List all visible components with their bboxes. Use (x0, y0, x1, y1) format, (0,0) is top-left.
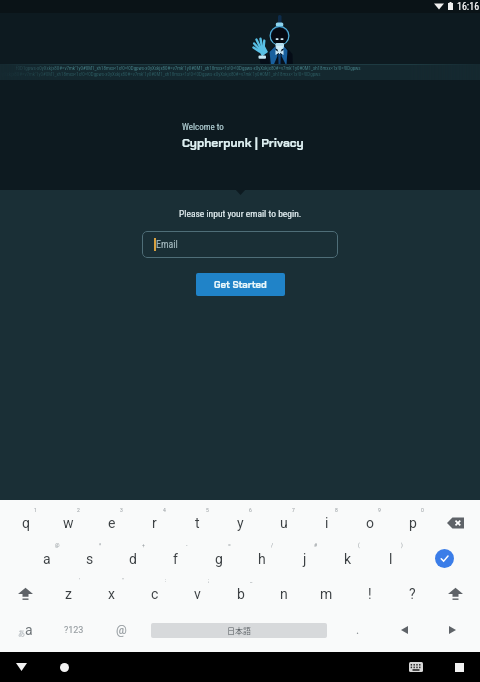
staticText: ) (401, 542, 403, 548)
staticText: 1 (34, 507, 37, 513)
button[interactable]: Back (6, 652, 36, 682)
staticText: j (303, 551, 307, 567)
staticText: y (237, 515, 244, 531)
button[interactable]: Move cursor right (430, 614, 474, 646)
button[interactable]: z (47, 576, 90, 611)
button[interactable]: Shift (434, 576, 477, 611)
staticText: 5 (206, 507, 209, 513)
staticText: ' (79, 577, 80, 583)
button[interactable]: r (133, 505, 176, 540)
button[interactable]: s (68, 541, 111, 576)
button[interactable]: @ (99, 614, 143, 646)
button[interactable]: o (348, 505, 391, 540)
staticText: p (409, 515, 417, 531)
button[interactable]: a (25, 541, 68, 576)
button[interactable]: Switch language (3, 614, 47, 646)
staticText: m (320, 586, 333, 602)
staticText: v (194, 586, 201, 602)
button[interactable]: Switch keyboard (401, 652, 431, 682)
staticText: あ (18, 628, 25, 638)
staticText: @ (55, 542, 60, 548)
button[interactable]: k (326, 541, 369, 576)
staticText: f0D1gpws-x0yXxkjx80#=v7mk'1y0#0M1_xh18mx… (16, 65, 361, 71)
button[interactable]: b (219, 576, 262, 611)
staticText: w (63, 515, 74, 531)
staticText: a (43, 551, 51, 567)
staticText: c (151, 586, 159, 602)
button[interactable]: n (262, 576, 305, 611)
button[interactable]: w (47, 505, 90, 540)
staticText: 7 (292, 507, 295, 513)
button[interactable]: l (369, 541, 412, 576)
staticText: r (152, 515, 157, 531)
staticText: k (344, 551, 352, 567)
staticText: * (99, 542, 102, 548)
staticText: 2 (77, 507, 80, 513)
staticText: t (195, 515, 200, 531)
button[interactable]: Email (142, 231, 338, 258)
staticText: 16:16 (457, 1, 480, 13)
button[interactable]: i (305, 505, 348, 540)
staticText: Please input your email to begin. (179, 208, 302, 219)
staticText: Welcome to (182, 122, 224, 133)
staticText: ! (368, 586, 372, 602)
staticText: 0 (421, 507, 424, 513)
button[interactable]: ?123 (52, 614, 96, 646)
button[interactable]: Move cursor left (382, 614, 426, 646)
button[interactable]: Recent apps (444, 652, 474, 682)
staticText: i (325, 515, 329, 531)
staticText: : (165, 577, 167, 583)
button[interactable]: v (176, 576, 219, 611)
button[interactable]: x (90, 576, 133, 611)
button[interactable]: ! (348, 576, 391, 611)
staticText: _ (250, 577, 253, 583)
staticText: 4 (163, 507, 166, 513)
button[interactable]: m (305, 576, 348, 611)
staticText: q (22, 515, 30, 531)
button[interactable]: Get Started (196, 273, 285, 296)
staticText: a (25, 622, 33, 638)
staticText: . (356, 623, 360, 637)
button[interactable]: p (391, 505, 434, 540)
staticText: f (173, 551, 178, 567)
button[interactable]: j (283, 541, 326, 576)
button[interactable]: ? (391, 576, 434, 611)
staticText: n (280, 586, 288, 602)
staticText: Get Started (214, 279, 267, 291)
button[interactable]: h (240, 541, 283, 576)
staticText: h (258, 551, 266, 567)
button[interactable]: Shift (4, 576, 47, 611)
staticText: ( (358, 542, 360, 548)
staticText: o (366, 515, 374, 531)
staticText: = (228, 542, 231, 548)
button[interactable]: y (219, 505, 262, 540)
staticText: - (186, 542, 188, 548)
button[interactable]: Enter (412, 541, 477, 576)
button[interactable]: t (176, 505, 219, 540)
staticText: Cypherpunk | Privacy (182, 135, 304, 151)
staticText: 8 (335, 507, 338, 513)
button[interactable]: Backspace (434, 505, 477, 540)
button[interactable]: c (133, 576, 176, 611)
staticText: l (389, 551, 393, 567)
staticText: d (129, 551, 137, 567)
staticText: z (65, 586, 72, 602)
staticText: u (280, 515, 288, 531)
button[interactable]: g (197, 541, 240, 576)
staticText: x (108, 586, 115, 602)
button[interactable]: d (111, 541, 154, 576)
staticText: 6 (249, 507, 252, 513)
staticText: ?123 (64, 625, 84, 636)
staticText: " (122, 577, 124, 583)
staticText: 3 (120, 507, 123, 513)
staticText: ; (208, 577, 210, 583)
button[interactable]: u (262, 505, 305, 540)
button[interactable]: 日本語 (151, 623, 327, 638)
button[interactable]: e (90, 505, 133, 540)
button[interactable]: Home (49, 652, 79, 682)
button[interactable]: q (4, 505, 47, 540)
staticText: b (237, 586, 245, 602)
staticText: g (215, 551, 223, 567)
button[interactable]: f (154, 541, 197, 576)
